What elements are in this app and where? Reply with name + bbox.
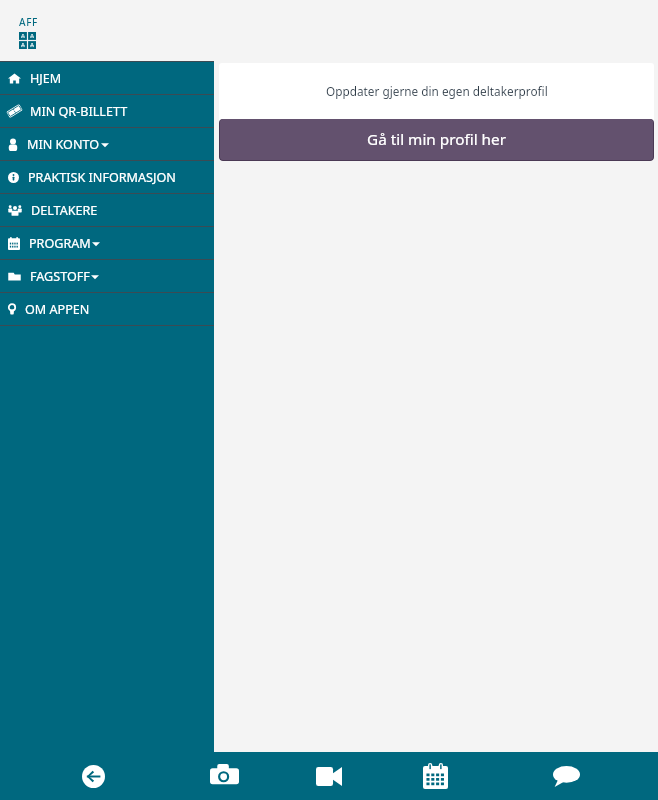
button[interactable]: HJEM	[0, 62, 214, 94]
staticText: Oppdater gjerne din egen deltakerprofil	[326, 83, 548, 99]
button[interactable]: MIN KONTO	[0, 128, 214, 160]
button[interactable]: DELTAKERE	[0, 194, 214, 226]
button[interactable]: Chat	[536, 752, 596, 800]
staticText: MIN KONTO	[27, 136, 100, 153]
staticText: OM APPEN	[25, 301, 90, 318]
button[interactable]: FAGSTOFF	[0, 260, 214, 292]
button[interactable]: PRAKTISK INFORMASJON	[0, 161, 214, 193]
button[interactable]: Camera	[194, 752, 254, 800]
staticText: Gå til min profil her	[367, 129, 506, 150]
button[interactable]: Back	[63, 752, 123, 800]
button[interactable]: Video	[299, 752, 359, 800]
staticText: PROGRAM	[29, 235, 91, 252]
staticText: MIN QR-BILLETT	[30, 103, 128, 120]
button[interactable]: PROGRAM	[0, 227, 214, 259]
button[interactable]: OM APPEN	[0, 293, 214, 325]
staticText: HJEM	[30, 70, 62, 87]
button[interactable]: Calendar	[405, 752, 465, 800]
button[interactable]: MIN QR-BILLETT	[0, 95, 214, 127]
staticText: AFF	[19, 15, 38, 29]
staticText: DELTAKERE	[31, 202, 98, 219]
staticText: PRAKTISK INFORMASJON	[28, 169, 176, 186]
button[interactable]: Gå til min profil her	[220, 119, 653, 160]
staticText: FAGSTOFF	[30, 268, 90, 285]
